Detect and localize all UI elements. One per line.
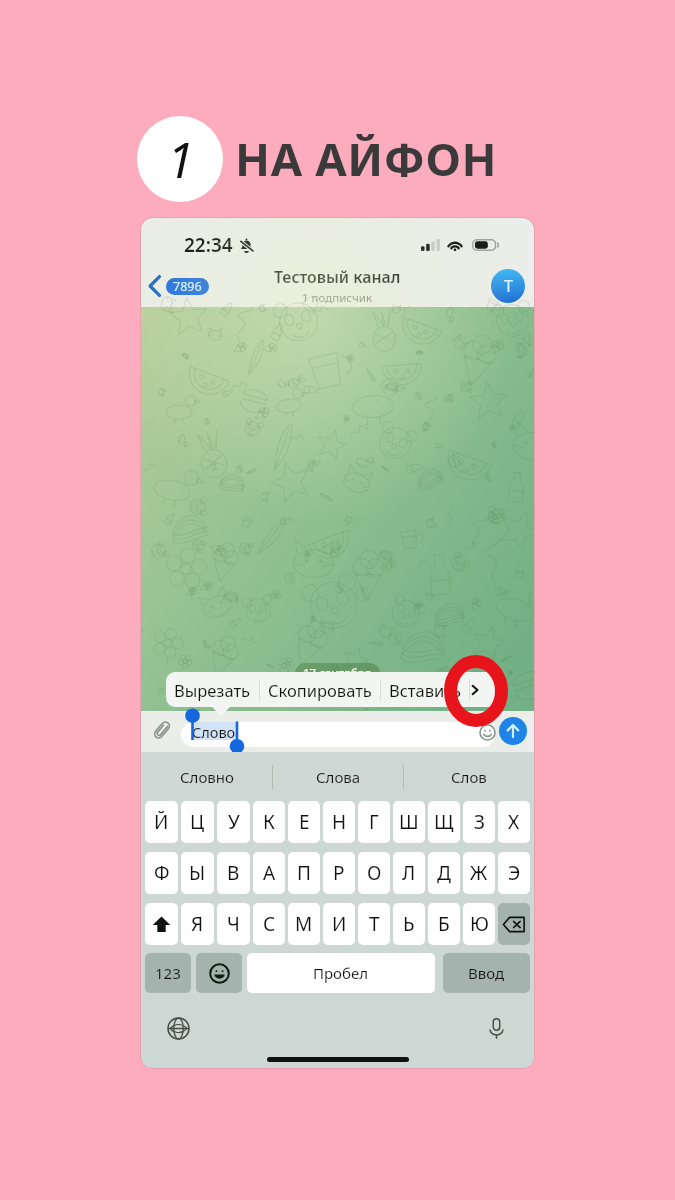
button[interactable]: Change keyboard — [167, 1017, 190, 1040]
staticText: Скопировать — [268, 679, 372, 701]
staticText: 123 — [155, 963, 181, 983]
button[interactable]: Ж — [463, 852, 495, 894]
staticText: Ш — [399, 809, 419, 835]
staticText: Тестовый канал — [274, 266, 401, 288]
button[interactable]: К — [253, 801, 285, 843]
staticText: Р — [333, 860, 345, 886]
staticText: T — [504, 275, 513, 297]
staticText: Ф — [154, 860, 170, 886]
button[interactable]: Ввод — [443, 953, 530, 993]
button[interactable]: Щ — [428, 801, 460, 843]
button[interactable]: Я — [181, 903, 214, 945]
staticText: НА АЙФОН — [235, 127, 498, 189]
button[interactable]: Attach — [152, 720, 172, 740]
button[interactable]: Р — [323, 852, 355, 894]
staticText: М — [295, 911, 313, 937]
button[interactable]: 123 — [145, 953, 191, 993]
button[interactable]: У — [217, 801, 250, 843]
staticText: 22:34 — [184, 232, 233, 258]
button[interactable]: Й — [145, 801, 178, 843]
button[interactable]: З — [463, 801, 495, 843]
button[interactable]: Л — [393, 852, 425, 894]
other: Back — [148, 275, 162, 297]
staticText: Щ — [434, 809, 454, 835]
button[interactable]: Х — [498, 801, 530, 843]
button[interactable]: Скопировать — [260, 672, 380, 707]
button[interactable]: Слов — [404, 752, 534, 801]
button[interactable]: Send — [499, 717, 527, 745]
staticText: Ц — [190, 809, 205, 835]
button[interactable]: М — [288, 903, 320, 945]
button[interactable]: Е — [288, 801, 320, 843]
staticText: Слов — [451, 767, 487, 787]
staticText: С — [263, 911, 276, 937]
button[interactable]: Г — [358, 801, 390, 843]
staticText: Вставить — [389, 679, 461, 701]
staticText: 1 — [167, 126, 194, 193]
staticText: Г — [369, 809, 379, 835]
button[interactable]: Step 1 — [137, 116, 223, 202]
button[interactable]: Stickers — [479, 724, 496, 741]
button[interactable]: Ц — [181, 801, 214, 843]
staticText: Э — [508, 860, 521, 886]
button[interactable]: Ь — [393, 903, 425, 945]
button[interactable]: В — [217, 852, 250, 894]
staticText: Я — [191, 911, 204, 937]
staticText: И — [332, 911, 347, 937]
staticText: 7896 — [173, 278, 202, 295]
staticText: Л — [402, 860, 416, 886]
staticText: У — [228, 809, 240, 835]
staticText: В — [227, 860, 240, 886]
staticText: 1 подписчик — [302, 290, 373, 306]
button[interactable]: Ы — [181, 852, 214, 894]
button[interactable]: Т — [358, 903, 390, 945]
button[interactable]: Backspace — [498, 903, 530, 945]
button[interactable]: Д — [428, 852, 460, 894]
button[interactable]: Э — [498, 852, 530, 894]
staticText: З — [474, 809, 485, 835]
staticText: Ю — [470, 911, 489, 937]
staticText: О — [367, 860, 382, 886]
staticText: Ввод — [468, 963, 505, 983]
button[interactable]: С — [253, 903, 285, 945]
staticText: Пробел — [313, 963, 369, 983]
button[interactable]: Emoji — [196, 953, 242, 993]
button[interactable]: Н — [323, 801, 355, 843]
staticText: Д — [437, 860, 451, 886]
staticText: Ж — [470, 860, 488, 886]
staticText: Слова — [316, 767, 361, 787]
button[interactable]: Словно — [141, 752, 272, 801]
staticText: Вырезать — [174, 679, 251, 701]
staticText: Х — [508, 809, 520, 835]
staticText: Й — [154, 809, 169, 835]
staticText: Т — [369, 911, 380, 937]
button[interactable]: Ч — [217, 903, 250, 945]
button[interactable]: Вырезать — [166, 672, 259, 707]
button[interactable]: П — [288, 852, 320, 894]
staticText: Слово — [192, 722, 236, 740]
staticText: П — [297, 860, 311, 886]
button[interactable]: Вставить — [381, 672, 469, 707]
button[interactable]: И — [323, 903, 355, 945]
button[interactable]: Dictation — [485, 1017, 508, 1040]
button[interactable]: О — [358, 852, 390, 894]
button[interactable]: Channel profile — [491, 269, 525, 303]
button[interactable]: Shift — [145, 903, 178, 945]
button[interactable]: Ш — [393, 801, 425, 843]
staticText: К — [263, 809, 275, 835]
button[interactable]: Ф — [145, 852, 178, 894]
staticText: Ь — [403, 911, 415, 937]
staticText: Н — [332, 809, 347, 835]
button[interactable]: Ю — [463, 903, 495, 945]
button[interactable]: Пробел — [247, 953, 435, 993]
staticText: Б — [438, 911, 450, 937]
button[interactable]: Back — [148, 275, 209, 297]
button[interactable]: Слова — [273, 752, 403, 801]
staticText: Ч — [227, 911, 240, 937]
button[interactable]: Б — [428, 903, 460, 945]
button[interactable]: More — [470, 672, 505, 707]
staticText: Ы — [189, 860, 206, 886]
staticText: Словно — [180, 767, 234, 787]
button[interactable]: А — [253, 852, 285, 894]
staticText: Е — [299, 809, 310, 835]
